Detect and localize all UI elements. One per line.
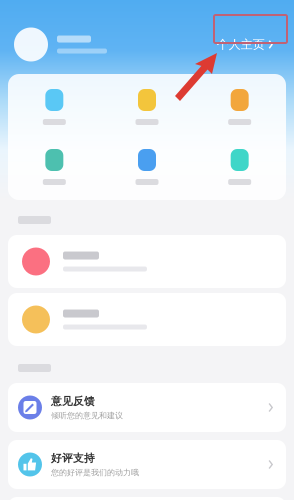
button[interactable]: Quick action: [8, 77, 101, 137]
button[interactable]: Quick action: [101, 77, 193, 137]
button[interactable]: List item: [8, 293, 286, 346]
staticText: 个人主页: [217, 37, 265, 52]
staticText: 您的好评是我们的动力哦: [51, 468, 139, 477]
button[interactable]: Quick action: [8, 137, 101, 197]
staticText: 倾听您的意见和建议: [51, 411, 123, 420]
button[interactable]: Quick action: [193, 77, 286, 137]
button[interactable]: List item: [8, 235, 286, 288]
button[interactable]: Quick action: [101, 137, 193, 197]
button[interactable]: 个人主页: [209, 32, 283, 57]
button[interactable]: 好评支持: [8, 440, 286, 489]
button[interactable]: Quick action: [193, 137, 286, 197]
staticText: 意见反馈: [51, 394, 95, 408]
staticText: 好评支持: [51, 451, 95, 465]
button[interactable]: 意见反馈: [8, 383, 286, 432]
